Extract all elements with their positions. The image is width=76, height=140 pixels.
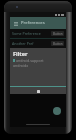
staticText: Some Preference [12, 31, 41, 36]
staticText: android.support [16, 58, 44, 63]
staticText: Preferences [21, 20, 45, 26]
button[interactable]: Some Preference [12, 29, 64, 38]
button[interactable]: Add [53, 107, 61, 115]
button[interactable]: Menu [10, 18, 21, 29]
button[interactable]: Ok [37, 90, 40, 93]
staticText: Button [53, 42, 63, 46]
staticText: Filter [13, 50, 28, 57]
staticText: Button [53, 32, 63, 36]
staticText: Another Pref [12, 41, 34, 46]
button[interactable]: Another Pref [12, 39, 64, 48]
staticText: androidx [13, 63, 29, 68]
